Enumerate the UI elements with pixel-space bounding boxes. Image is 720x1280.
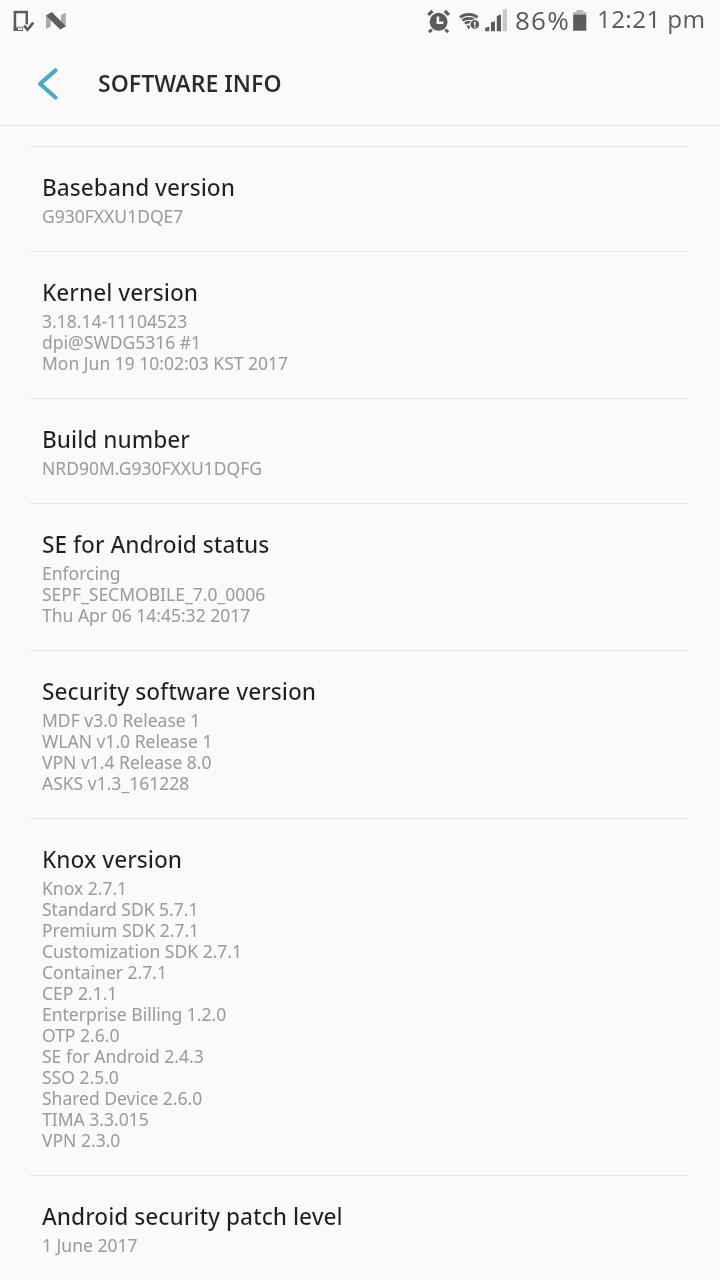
staticText: 1 June 2017 [42,1236,138,1257]
staticText: Baseband version [42,172,235,203]
staticText: Security software version [42,676,316,707]
staticText: SOFTWARE INFO [98,67,282,98]
staticText: Kernel version [42,277,199,308]
staticText: MDF v3.0 Release 1 WLAN v1.0 Release 1 V… [42,711,213,795]
staticText: 3.18.14-11104523 dpi@SWDG5316 #1 Mon Jun… [42,312,289,375]
button[interactable]: Build number [0,399,720,504]
button[interactable]: Android security patch level [0,1176,720,1280]
staticText: 12:21 pm [597,2,706,35]
staticText: G930FXXU1DQE7 [42,207,184,228]
button[interactable]: Knox version [0,819,720,1176]
staticText: Knox version [42,844,183,875]
button[interactable]: Baseband version [0,147,720,252]
staticText: 86% [515,2,570,37]
button[interactable]: Kernel version [0,252,720,399]
staticText: SE for Android status [42,529,270,560]
button[interactable]: SE for Android status [0,504,720,651]
staticText: Android security patch level [42,1201,343,1232]
button[interactable]: Back [22,58,74,110]
staticText: Knox 2.7.1 Standard SDK 5.7.1 Premium SD… [42,879,243,1152]
button[interactable]: Security software version [0,651,720,819]
staticText: Enforcing SEPF_SECMOBILE_7.0_0006 Thu Ap… [42,564,266,627]
staticText: NRD90M.G930FXXU1DQFG [42,459,263,480]
staticText: Build number [42,424,190,455]
